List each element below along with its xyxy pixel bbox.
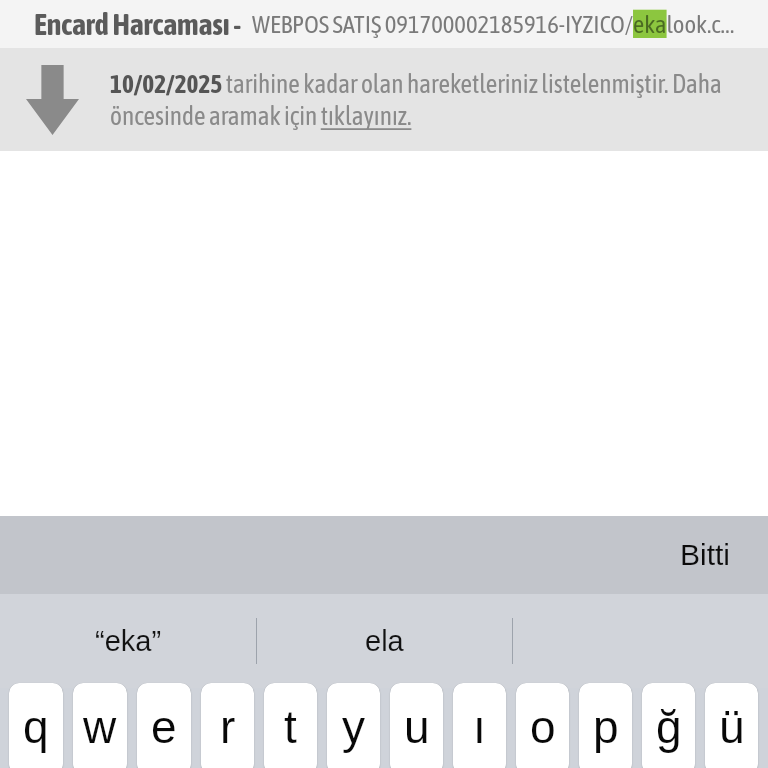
button[interactable]: ü [705, 683, 758, 768]
staticText: y [342, 701, 365, 752]
button[interactable]: w [73, 683, 127, 768]
button[interactable]: ı [453, 683, 506, 768]
staticText: r [220, 701, 236, 752]
button[interactable]: e [137, 683, 191, 768]
staticText: ğ [656, 701, 682, 752]
staticText: ela [365, 625, 404, 657]
button[interactable]: ela [257, 594, 512, 688]
button[interactable]: y [327, 683, 380, 768]
button[interactable]: r [201, 683, 254, 768]
staticText: Bitti [680, 538, 731, 572]
button[interactable]: ğ [642, 683, 695, 768]
staticText: q [23, 701, 49, 752]
staticText: e [151, 701, 177, 752]
staticText: w [83, 701, 117, 752]
staticText: ü [719, 701, 745, 752]
button[interactable]: t [264, 683, 317, 768]
staticText: WEBPOS SATIŞ 091700002185916-IYZICO/ekal… [252, 10, 735, 38]
staticText: ı [473, 701, 486, 752]
button[interactable] [513, 594, 768, 688]
button[interactable]: u [390, 683, 443, 768]
staticText: Encard Harcaması - [34, 7, 241, 41]
button[interactable]: p [579, 683, 632, 768]
staticText: o [530, 701, 556, 752]
staticText: p [593, 701, 619, 752]
staticText: “eka” [95, 625, 162, 657]
staticText: t [284, 701, 297, 752]
other: Download arrow [26, 65, 79, 135]
button[interactable]: Bitti [652, 528, 768, 582]
button[interactable]: o [516, 683, 569, 768]
staticText: u [404, 701, 430, 752]
button[interactable]: q [9, 683, 63, 768]
button[interactable]: “eka” [0, 594, 256, 688]
staticText: 10/02/2025 tarihine kadar olan hareketle… [110, 69, 726, 130]
